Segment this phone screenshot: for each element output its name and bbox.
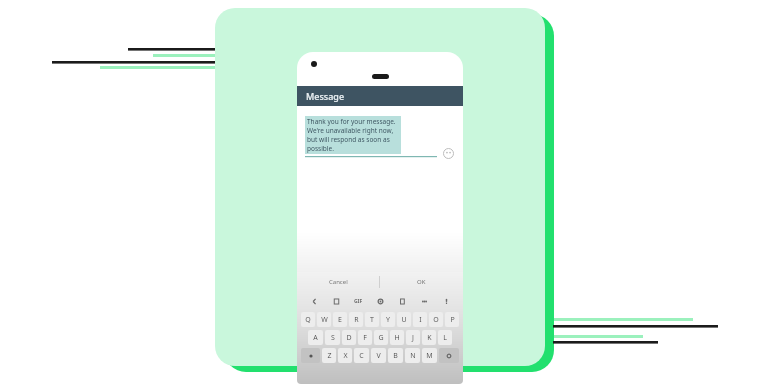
- button[interactable]: D: [342, 330, 356, 345]
- staticText: T: [370, 315, 374, 325]
- button[interactable]: Shift: [301, 348, 320, 363]
- staticText: E: [338, 315, 342, 325]
- button[interactable]: A: [308, 330, 323, 345]
- button[interactable]: R: [349, 312, 363, 327]
- staticText: W: [321, 315, 328, 325]
- button[interactable]: Backspace: [439, 348, 459, 363]
- button[interactable]: Voice input: [435, 292, 457, 310]
- button[interactable]: X: [338, 348, 352, 363]
- staticText: J: [412, 333, 414, 343]
- staticText: R: [354, 315, 359, 325]
- button[interactable]: Emoji: [443, 148, 454, 159]
- button[interactable]: K: [422, 330, 436, 345]
- staticText: C: [359, 351, 364, 361]
- staticText: V: [376, 351, 381, 361]
- button[interactable]: S: [325, 330, 340, 345]
- staticText: Q: [305, 315, 311, 325]
- button[interactable]: C: [354, 348, 369, 363]
- staticText: Thank you for your message. We're unavai…: [307, 117, 399, 153]
- staticText: Y: [386, 315, 390, 325]
- staticText: B: [393, 351, 398, 361]
- staticText: GIF: [354, 298, 363, 305]
- staticText: Cancel: [329, 278, 348, 286]
- button[interactable]: N: [405, 348, 420, 363]
- button[interactable]: F: [358, 330, 372, 345]
- button[interactable]: V: [371, 348, 386, 363]
- staticText: H: [394, 333, 400, 343]
- button[interactable]: Settings: [369, 292, 391, 310]
- staticText: I: [419, 315, 422, 325]
- staticText: Message: [306, 90, 345, 102]
- button[interactable]: W: [317, 312, 331, 327]
- button[interactable]: U: [397, 312, 411, 327]
- button[interactable]: Clipboard: [391, 292, 413, 310]
- button[interactable]: Back: [303, 292, 325, 310]
- button[interactable]: G: [374, 330, 388, 345]
- button[interactable]: Sticker: [325, 292, 347, 310]
- button[interactable]: Z: [322, 348, 336, 363]
- staticText: D: [346, 333, 352, 343]
- staticText: O: [433, 315, 439, 325]
- button[interactable]: GIF: [347, 292, 369, 310]
- staticText: G: [378, 333, 384, 343]
- button[interactable]: J: [406, 330, 420, 345]
- button[interactable]: L: [438, 330, 452, 345]
- staticText: Z: [327, 351, 332, 361]
- button[interactable]: Y: [381, 312, 395, 327]
- button[interactable]: More: [413, 292, 435, 310]
- staticText: A: [313, 333, 318, 343]
- staticText: OK: [417, 278, 426, 286]
- button[interactable]: O: [429, 312, 443, 327]
- staticText: S: [331, 333, 335, 343]
- staticText: P: [450, 315, 455, 325]
- staticText: K: [427, 333, 432, 343]
- button[interactable]: M: [422, 348, 437, 363]
- button[interactable]: H: [390, 330, 404, 345]
- button[interactable]: I: [413, 312, 427, 327]
- button[interactable]: T: [365, 312, 379, 327]
- staticText: F: [363, 333, 367, 343]
- button[interactable]: Q: [301, 312, 315, 327]
- staticText: N: [410, 351, 416, 361]
- button[interactable]: Message: [297, 86, 463, 106]
- staticText: X: [343, 351, 348, 361]
- button[interactable]: Cancel: [297, 272, 379, 292]
- staticText: M: [426, 351, 433, 361]
- button[interactable]: P: [445, 312, 459, 327]
- button[interactable]: OK: [380, 272, 463, 292]
- button[interactable]: B: [388, 348, 403, 363]
- staticText: U: [401, 315, 407, 325]
- button[interactable]: E: [333, 312, 347, 327]
- staticText: L: [443, 333, 447, 343]
